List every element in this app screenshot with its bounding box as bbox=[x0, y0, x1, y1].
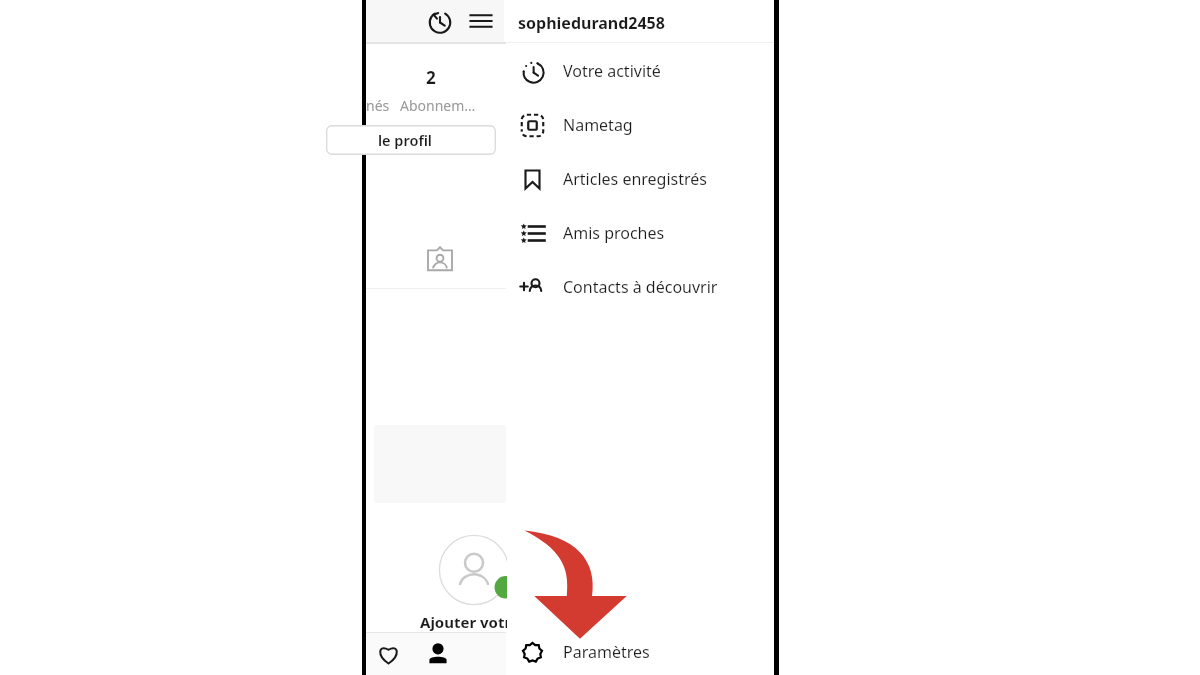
button[interactable]: Articles enregistrés bbox=[507, 152, 774, 206]
staticText: Abonnem… bbox=[400, 96, 476, 115]
staticText: sophiedurand2458 bbox=[518, 12, 665, 34]
staticText: Articles enregistrés bbox=[563, 168, 708, 190]
staticText: Paramètres bbox=[563, 641, 650, 663]
button[interactable]: Nametag bbox=[507, 98, 774, 152]
button[interactable]: Notifications bbox=[366, 633, 410, 675]
staticText: Amis proches bbox=[563, 222, 665, 244]
button[interactable]: Historique bbox=[418, 0, 460, 42]
button[interactable]: Menu bbox=[460, 0, 502, 42]
staticText: Contacts à découvrir bbox=[563, 276, 718, 298]
button[interactable]: Votre activité bbox=[507, 44, 774, 98]
staticText: 2 bbox=[426, 66, 436, 89]
button[interactable]: Contacts à découvrir bbox=[507, 260, 774, 314]
button[interactable]: Profil bbox=[414, 633, 462, 675]
staticText: nés bbox=[366, 96, 390, 115]
staticText: Ajouter votr bbox=[420, 612, 512, 632]
button[interactable]: Amis proches bbox=[507, 206, 774, 260]
staticText: Nametag bbox=[563, 114, 633, 136]
staticText: le profil bbox=[378, 130, 432, 150]
button[interactable]: le profil bbox=[326, 125, 496, 155]
staticText: Votre activité bbox=[563, 60, 661, 82]
button[interactable]: Paramètres bbox=[507, 629, 774, 675]
